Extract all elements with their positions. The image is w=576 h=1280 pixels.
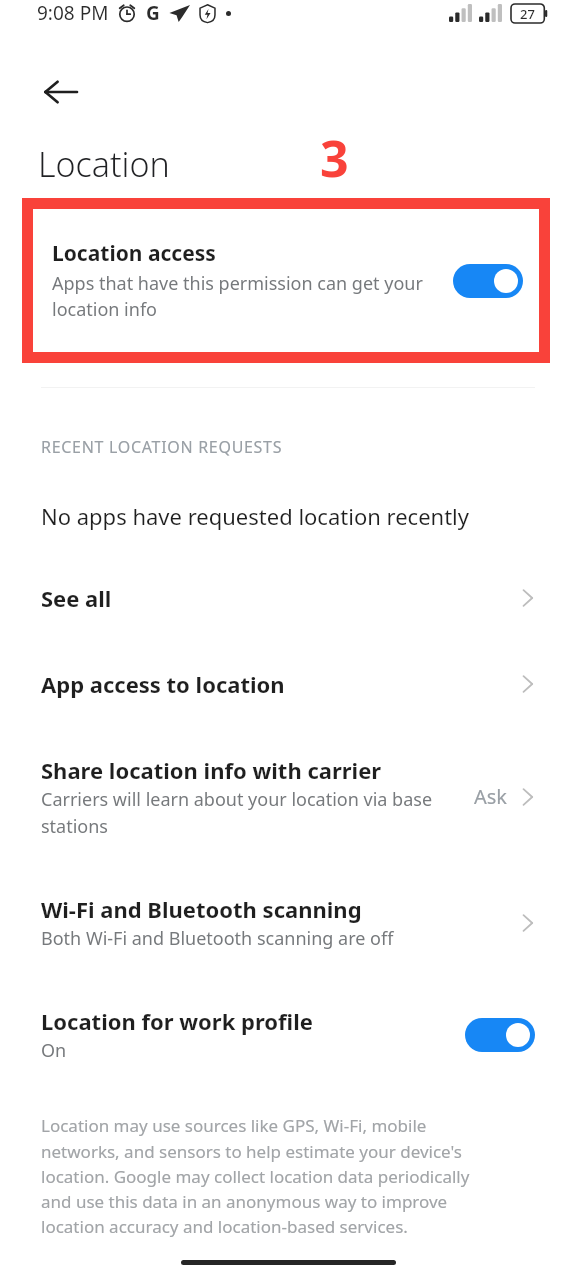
staticText: G xyxy=(146,0,160,26)
staticText: On xyxy=(41,1038,67,1063)
staticText: No apps have requested location recently xyxy=(41,501,469,531)
staticText: Location for work profile xyxy=(41,1006,313,1036)
staticText: 27 xyxy=(520,5,535,23)
button[interactable]: No apps have requested location recently xyxy=(0,480,576,552)
staticText: Location xyxy=(38,141,170,187)
staticText: 9:08 PM xyxy=(37,0,109,26)
staticText: Wi-Fi and Bluetooth scanning xyxy=(41,894,362,924)
staticText: Both Wi-Fi and Bluetooth scanning are of… xyxy=(41,926,394,951)
staticText: Share location info with carrier xyxy=(41,755,382,785)
button[interactable]: Toggle on xyxy=(453,264,523,298)
staticText: Location may use sources like GPS, Wi-Fi… xyxy=(41,1114,501,1238)
button[interactable]: Location for work profile xyxy=(0,986,576,1082)
button[interactable]: See all xyxy=(0,562,576,634)
button[interactable]: Back xyxy=(29,60,93,124)
staticText: Ask xyxy=(474,783,508,810)
button[interactable]: Location access xyxy=(33,209,539,352)
staticText: App access to location xyxy=(41,669,285,699)
button[interactable]: Wi-Fi and Bluetooth scanning xyxy=(0,872,576,972)
button[interactable]: Toggle on xyxy=(465,1018,535,1052)
staticText: Location access xyxy=(52,239,216,268)
staticText: Apps that have this permission can get y… xyxy=(52,271,445,322)
button[interactable]: App access to location xyxy=(0,648,576,720)
staticText: RECENT LOCATION REQUESTS xyxy=(41,436,283,458)
staticText: See all xyxy=(41,583,112,613)
staticText: 3 xyxy=(320,124,349,192)
staticText: Carriers will learn about your location … xyxy=(41,787,468,838)
button[interactable]: Share location info with carrier xyxy=(0,734,576,858)
